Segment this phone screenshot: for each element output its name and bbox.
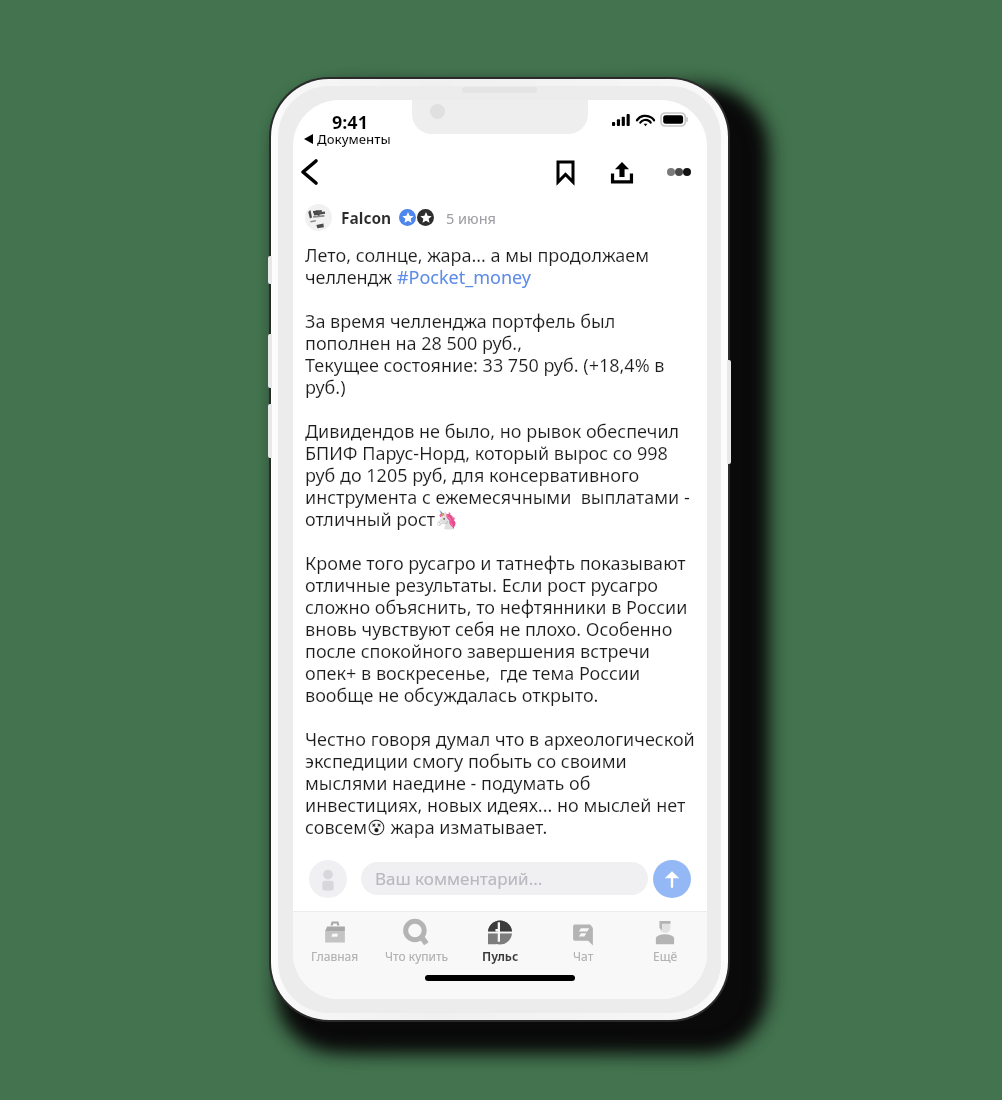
staticText: Ещё — [653, 948, 678, 964]
staticText: 9:41 — [332, 110, 368, 135]
button[interactable]: Чат — [542, 912, 624, 964]
staticText: Что купить — [385, 948, 449, 964]
button[interactable]: Пульс — [459, 912, 541, 964]
button[interactable]: More options — [661, 154, 697, 190]
button[interactable]: Ещё — [624, 912, 706, 964]
button[interactable]: Share — [604, 154, 640, 190]
staticText: Чат — [573, 948, 594, 964]
button[interactable]: Send — [653, 860, 691, 898]
staticText: Документы — [317, 130, 391, 148]
staticText: Ваш комментарий... — [375, 867, 543, 890]
staticText: Лето, солнце, жара... а мы продолжаем че… — [305, 243, 695, 840]
staticText: Falcon — [341, 207, 392, 228]
button[interactable]: Bookmark — [547, 154, 583, 190]
button[interactable]: Главная — [294, 912, 376, 964]
staticText: Главная — [311, 948, 359, 964]
button[interactable]: Что купить — [376, 912, 458, 964]
button[interactable]: Back — [293, 151, 330, 193]
staticText: Пульс — [482, 948, 519, 964]
button[interactable]: Ваш комментарий... — [361, 862, 648, 895]
staticText: 5 июня — [446, 208, 496, 228]
